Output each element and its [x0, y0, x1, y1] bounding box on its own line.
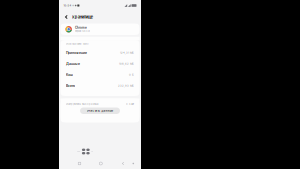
staticText: Приложение — [66, 51, 87, 55]
button[interactable]: Очистить данные — [80, 107, 120, 114]
staticText: Очистить данные — [86, 109, 113, 112]
button[interactable]: Приложение — [60, 47, 139, 58]
staticText: Использовано всего — [66, 42, 89, 45]
staticText: Версия 120.0.61 — [75, 30, 90, 33]
staticText: Данные — [66, 62, 80, 66]
button[interactable]: Back — [63, 11, 70, 22]
button[interactable]: Данные — [60, 58, 139, 69]
button[interactable]: App shortcuts — [74, 146, 96, 157]
button[interactable]: Recent apps — [73, 158, 85, 169]
staticText: Хранилище — [72, 15, 93, 19]
button[interactable]: Кэш — [60, 69, 139, 80]
button[interactable]: Chrome — [60, 23, 139, 35]
staticText: 0 байт — [126, 102, 134, 106]
staticText: Кэш — [66, 73, 73, 77]
staticText: Chrome — [75, 26, 87, 30]
button[interactable]: Home — [95, 158, 107, 169]
staticText: 10:54 — [63, 4, 71, 7]
staticText: 108,62 МБ — [119, 62, 134, 65]
button[interactable]: Всего — [60, 80, 139, 91]
staticText: Всего — [66, 84, 75, 88]
button[interactable]: Back — [117, 158, 129, 169]
staticText: Инструменты выбора кэша — [66, 102, 98, 106]
staticText: 0 Б — [129, 73, 134, 76]
staticText: 124,31 МБ — [120, 51, 134, 54]
button[interactable]: Hide navigation bar — [128, 158, 138, 169]
staticText: 232,93 МБ — [118, 84, 134, 87]
